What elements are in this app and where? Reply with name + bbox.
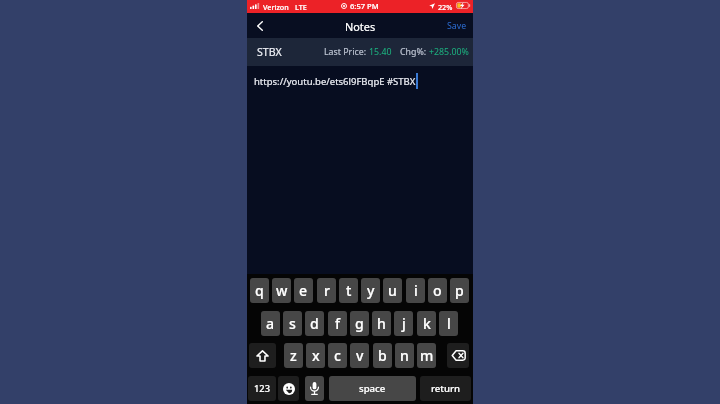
button[interactable]: Shift	[249, 343, 276, 368]
staticText: v	[356, 346, 364, 365]
staticText: u	[388, 281, 397, 300]
button[interactable]: o	[428, 278, 447, 303]
staticText: x	[312, 346, 320, 365]
staticText: +285.00%	[429, 46, 469, 58]
staticText: STBX	[257, 45, 282, 59]
staticText: return	[431, 382, 461, 395]
button[interactable]: q	[250, 278, 269, 303]
staticText: Chg%:	[400, 46, 429, 58]
staticText: p	[455, 281, 464, 300]
button[interactable]: p	[450, 278, 469, 303]
button[interactable]: https://youtu.be/ets6l9FBqpE #STBX	[247, 66, 473, 275]
staticText: e	[299, 281, 308, 300]
button[interactable]: k	[417, 311, 436, 336]
button[interactable]: a	[261, 311, 280, 336]
staticText: Notes	[345, 19, 376, 34]
staticText: a	[266, 314, 275, 333]
staticText: 123	[254, 382, 270, 395]
staticText: o	[433, 281, 442, 300]
button[interactable]: Dictation	[305, 376, 324, 401]
button[interactable]: c	[328, 343, 347, 368]
button[interactable]: STBX	[247, 38, 473, 66]
staticText: f	[335, 314, 341, 333]
button[interactable]: return	[420, 376, 471, 401]
staticText: i	[414, 281, 418, 300]
staticText: w	[276, 281, 288, 300]
staticText: g	[355, 314, 364, 333]
button[interactable]: e	[294, 278, 313, 303]
staticText: y	[367, 281, 375, 300]
staticText: s	[289, 314, 296, 333]
button[interactable]: r	[317, 278, 336, 303]
button[interactable]: f	[328, 311, 347, 336]
staticText: 15.40	[369, 46, 392, 58]
button[interactable]: space	[329, 376, 416, 401]
button[interactable]: u	[383, 278, 402, 303]
button[interactable]: y	[361, 278, 380, 303]
staticText: m	[420, 346, 434, 365]
button[interactable]: Emoji	[278, 376, 299, 401]
staticText: Save	[447, 20, 467, 32]
button[interactable]: Backspace	[447, 343, 469, 368]
staticText: b	[378, 346, 387, 365]
button[interactable]: z	[284, 343, 303, 368]
button[interactable]: d	[305, 311, 324, 336]
button[interactable]: n	[395, 343, 414, 368]
staticText: LTE	[295, 2, 307, 12]
button[interactable]: i	[406, 278, 425, 303]
button[interactable]: m	[417, 343, 436, 368]
staticText: t	[346, 281, 352, 300]
staticText: c	[334, 346, 341, 365]
button[interactable]: Save	[447, 20, 467, 32]
staticText: d	[310, 314, 319, 333]
staticText: k	[423, 314, 431, 333]
button[interactable]: t	[339, 278, 358, 303]
staticText: Verizon	[263, 2, 289, 12]
button[interactable]: w	[272, 278, 291, 303]
button[interactable]: v	[350, 343, 369, 368]
staticText: n	[400, 346, 409, 365]
staticText: space	[359, 382, 386, 395]
staticText: Last Price:	[324, 46, 369, 58]
staticText: q	[255, 281, 264, 300]
staticText: j	[402, 314, 406, 333]
button[interactable]: j	[394, 311, 413, 336]
button[interactable]: x	[306, 343, 325, 368]
button[interactable]: l	[439, 311, 458, 336]
staticText: 22%	[438, 2, 453, 12]
button[interactable]: Numbers	[248, 376, 276, 401]
staticText: z	[290, 346, 297, 365]
staticText: r	[324, 281, 330, 300]
button[interactable]: Back	[248, 13, 271, 39]
button[interactable]: b	[373, 343, 392, 368]
staticText: l	[447, 314, 451, 333]
staticText: https://youtu.be/ets6l9FBqpE #STBX	[254, 75, 416, 88]
button[interactable]: g	[350, 311, 369, 336]
button[interactable]: s	[283, 311, 302, 336]
button[interactable]: h	[372, 311, 391, 336]
staticText: h	[377, 314, 386, 333]
staticText: 6:57 PM	[350, 1, 379, 11]
